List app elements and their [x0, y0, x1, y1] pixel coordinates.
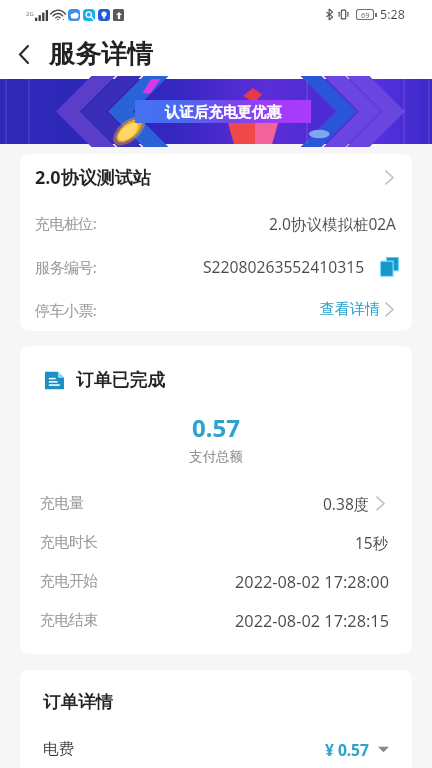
- button[interactable]: 停车小票:: [35, 288, 394, 331]
- staticText: 2.0协议测试站: [35, 165, 151, 190]
- staticText: 认证后充电更优惠: [165, 103, 281, 121]
- staticText: 2G: [26, 10, 34, 18]
- staticText: 0.57: [20, 411, 412, 444]
- staticText: 5:28: [380, 6, 405, 23]
- staticText: 充电量: [40, 494, 84, 513]
- staticText: 充电结束: [40, 611, 98, 630]
- staticText: 15秒: [355, 532, 389, 553]
- staticText: 服务详情: [49, 38, 153, 71]
- staticText: 订单详情: [43, 691, 113, 713]
- button[interactable]: 电费: [43, 730, 389, 768]
- staticText: 2022-08-02 17:28:15: [235, 610, 389, 632]
- staticText: 充电开始: [40, 572, 98, 591]
- staticText: 服务编号:: [35, 257, 97, 277]
- staticText: ¥ 0.57: [325, 739, 369, 760]
- staticText: 查看详情: [320, 300, 380, 319]
- staticText: S22080263552410315: [203, 256, 365, 277]
- staticText: 停车小票:: [35, 300, 97, 320]
- button[interactable]: Back: [5, 35, 43, 73]
- staticText: 2022-08-02 17:28:00: [235, 571, 389, 593]
- button[interactable]: 2.0协议测试站: [35, 154, 394, 201]
- staticText: 订单已完成: [76, 369, 165, 391]
- staticText: 电费: [43, 739, 74, 759]
- staticText: 充电时长: [40, 533, 98, 552]
- staticText: 支付总额: [20, 448, 412, 465]
- staticText: 充电桩位:: [35, 213, 97, 233]
- button[interactable]: 充电量: [40, 484, 385, 523]
- staticText: 2.0协议模拟桩02A: [269, 213, 397, 234]
- button[interactable]: Copy: [380, 257, 399, 277]
- staticText: 0.38度: [323, 493, 370, 514]
- staticText: 69: [361, 10, 370, 19]
